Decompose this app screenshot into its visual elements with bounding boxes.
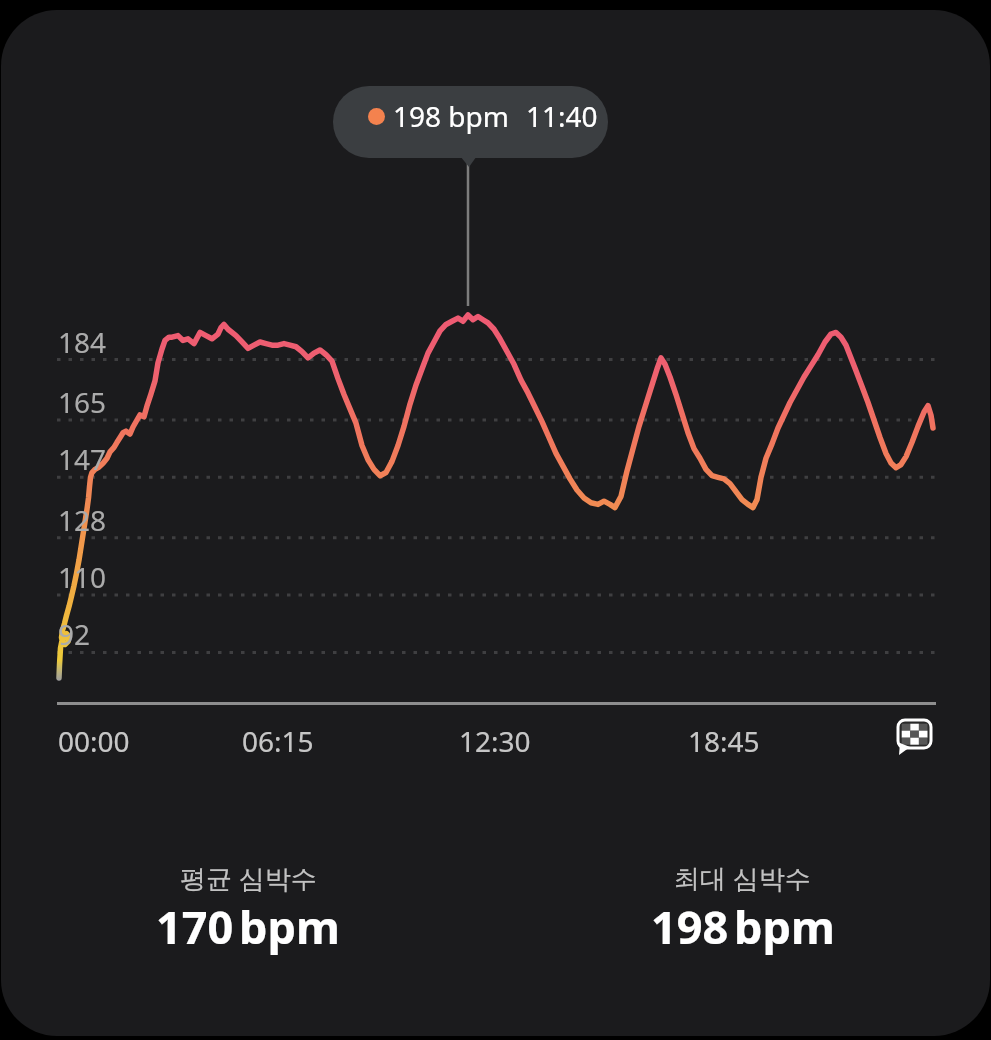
staticText: 12:30 <box>459 722 531 760</box>
staticText: 92 <box>58 615 91 649</box>
staticText: 147 <box>58 440 107 474</box>
staticText: 06:15 <box>242 722 314 760</box>
staticText: 198 <box>651 896 729 957</box>
staticText: 110 <box>58 558 107 592</box>
staticText: 18:45 <box>688 722 760 760</box>
staticText: 00:00 <box>58 722 130 760</box>
staticText: 평균 심박수 <box>180 860 317 896</box>
staticText: 128 <box>58 501 107 535</box>
button[interactable] <box>889 710 945 766</box>
staticText: 198 bpm <box>393 97 509 135</box>
staticText: 165 <box>58 383 107 417</box>
staticText: 최대 심박수 <box>674 860 811 896</box>
staticText: 11:40 <box>526 97 598 135</box>
button[interactable]: 최대 심박수 <box>495 860 990 957</box>
button[interactable]: 198 bpm <box>333 86 608 158</box>
staticText: bpm <box>734 896 835 957</box>
button[interactable]: 평균 심박수 <box>1 860 495 957</box>
staticText: 184 <box>58 323 107 357</box>
staticText: 170 <box>156 896 234 957</box>
staticText: bpm <box>239 896 340 957</box>
